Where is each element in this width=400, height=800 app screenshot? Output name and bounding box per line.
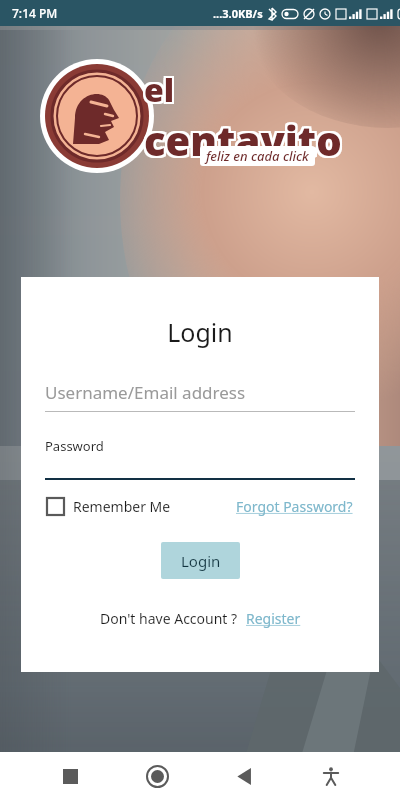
staticText: Password bbox=[45, 437, 104, 455]
staticText: Forgot Password? bbox=[236, 497, 353, 516]
staticText: el bbox=[146, 66, 177, 110]
button[interactable]: Forgot Password? bbox=[236, 497, 353, 516]
staticText: Login bbox=[181, 551, 221, 571]
button[interactable]: Accessibility bbox=[309, 754, 353, 798]
staticText: centavito bbox=[146, 111, 344, 165]
button[interactable]: Home bbox=[135, 754, 179, 798]
button[interactable]: Username/Email address bbox=[45, 381, 355, 412]
staticText: el bbox=[144, 70, 175, 114]
staticText: el bbox=[146, 70, 177, 114]
staticText: Don't have Account ? bbox=[100, 609, 238, 628]
button[interactable]: Password bbox=[45, 437, 355, 480]
staticText: centavito bbox=[142, 115, 340, 169]
staticText: ...3.0KB/s bbox=[213, 6, 263, 21]
staticText: el bbox=[146, 68, 177, 112]
button[interactable]: Recent apps bbox=[48, 754, 92, 798]
button[interactable]: Register bbox=[246, 609, 301, 628]
button[interactable]: Remember Me bbox=[47, 497, 171, 516]
staticText: centavito bbox=[146, 113, 344, 167]
staticText: centavito bbox=[142, 111, 340, 165]
staticText: el bbox=[144, 68, 175, 112]
staticText: centavito bbox=[142, 113, 340, 167]
staticText: el bbox=[142, 70, 173, 114]
staticText: feliz en cada click bbox=[206, 147, 309, 165]
button[interactable]: Login bbox=[161, 542, 240, 579]
staticText: Login bbox=[21, 315, 379, 349]
staticText: Remember Me bbox=[73, 497, 171, 516]
staticText: el bbox=[144, 66, 175, 110]
staticText: centavito bbox=[146, 115, 344, 169]
staticText: 7:14 PM bbox=[12, 5, 58, 21]
button[interactable]: Back bbox=[222, 754, 266, 798]
staticText: centavito bbox=[144, 111, 342, 165]
staticText: centavito bbox=[144, 113, 342, 167]
staticText: el bbox=[142, 68, 173, 112]
staticText: Username/Email address bbox=[45, 381, 246, 404]
staticText: el bbox=[142, 66, 173, 110]
staticText: centavito bbox=[144, 115, 342, 169]
staticText: Register bbox=[246, 609, 301, 628]
